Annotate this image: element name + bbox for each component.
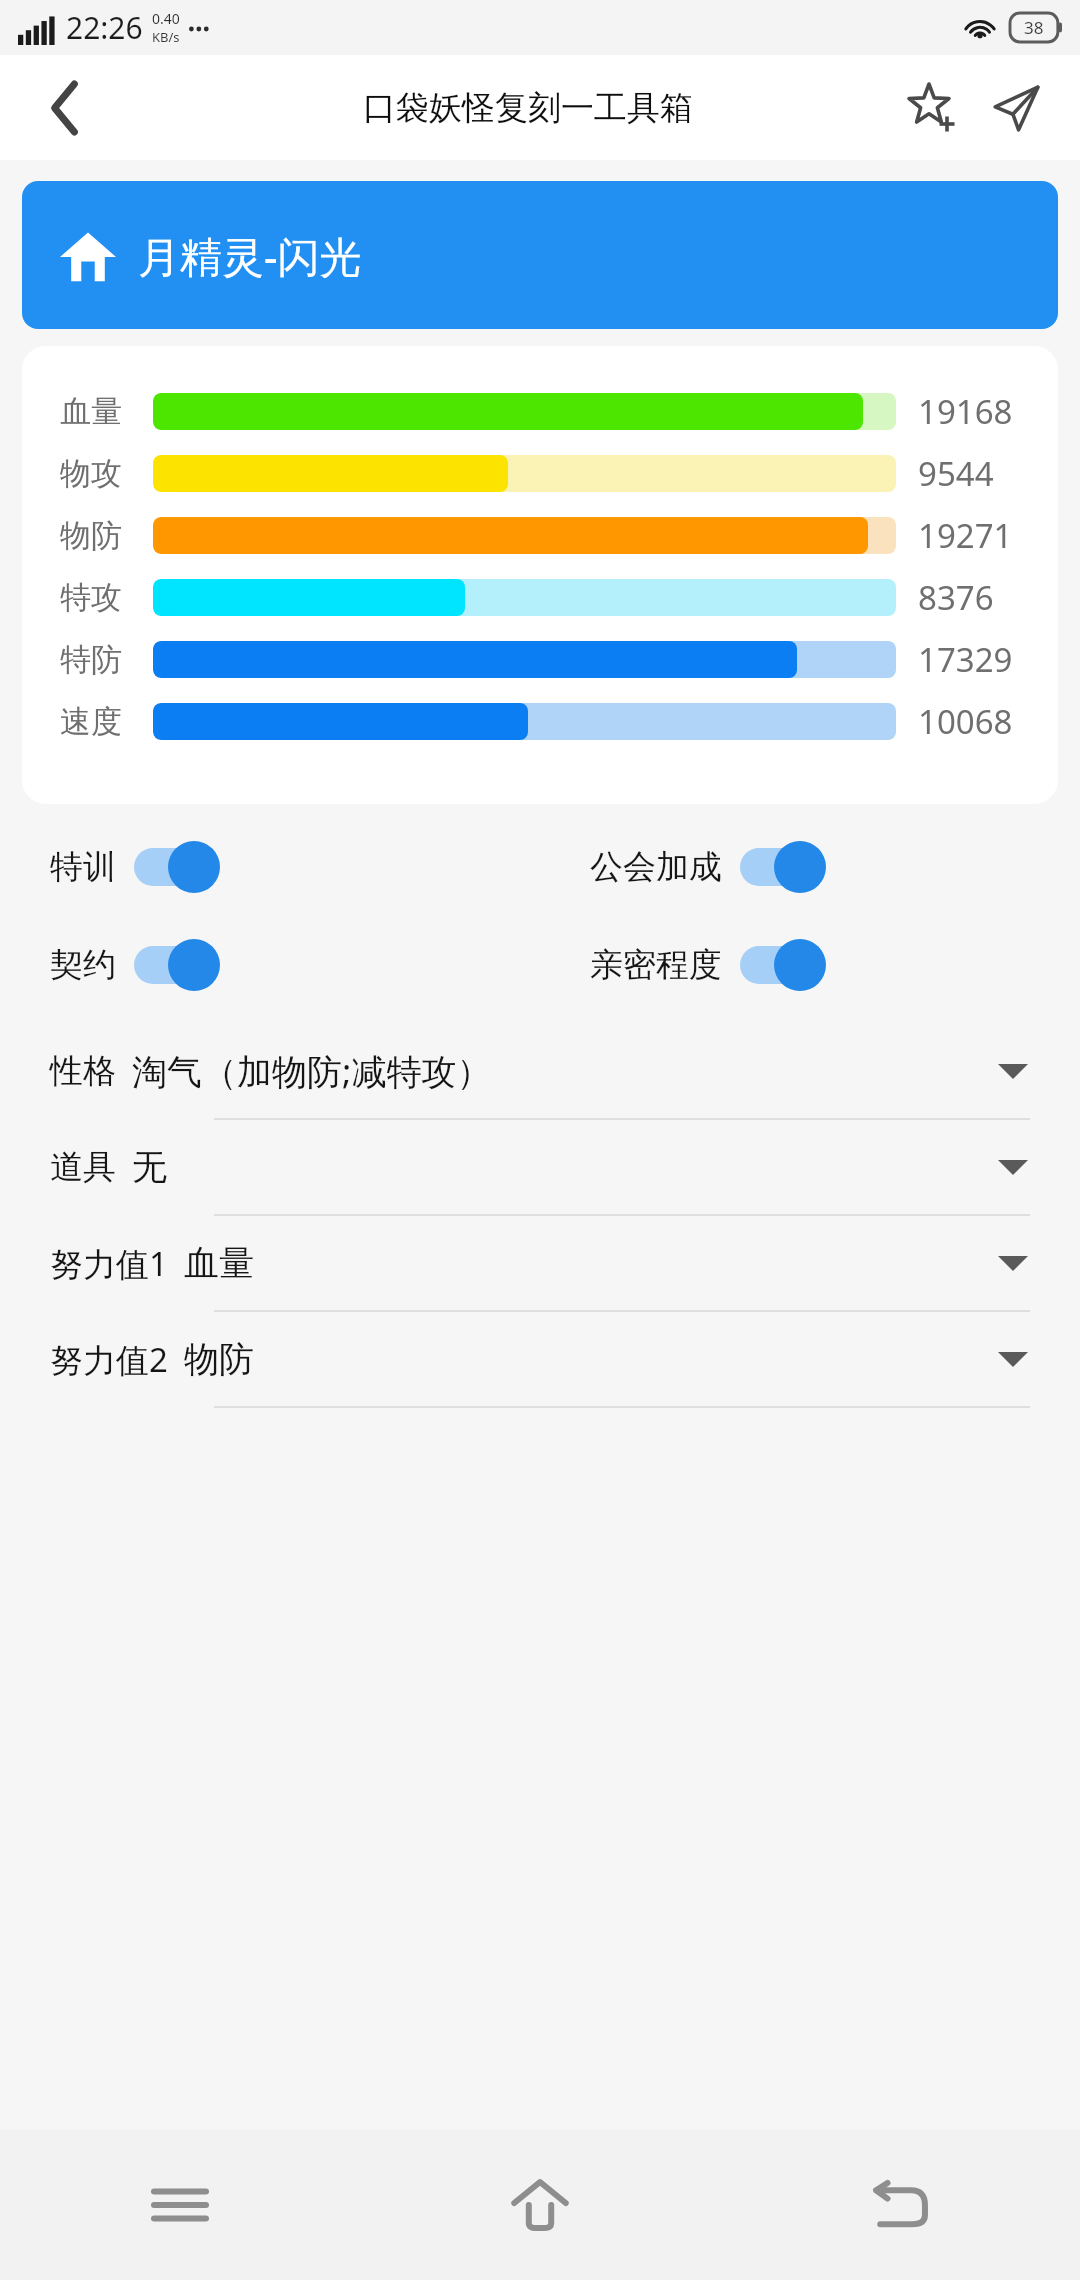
staticText: 19271	[918, 513, 1058, 558]
button[interactable]: 亲密程度	[590, 926, 1080, 1004]
staticText: 特训	[50, 846, 116, 888]
staticText: 契约	[50, 944, 116, 986]
button[interactable]: 努力值2	[0, 1312, 1080, 1408]
button[interactable]: Back	[720, 2130, 1080, 2280]
staticText: 0.40	[152, 9, 180, 28]
staticText: 19168	[918, 389, 1058, 434]
staticText: 努力值2	[50, 1337, 168, 1382]
staticText: 血量	[60, 392, 136, 431]
button[interactable]: 性格	[0, 1024, 1080, 1120]
staticText: 8376	[918, 575, 1058, 620]
button[interactable]: 月精灵-闪光	[22, 181, 1058, 329]
staticText: 血量	[184, 1241, 998, 1285]
staticText: 速度	[60, 702, 136, 741]
staticText: KB/s	[152, 28, 180, 46]
button[interactable]: 道具	[0, 1120, 1080, 1216]
staticText: 公会加成	[590, 846, 722, 888]
staticText: 9544	[918, 451, 1058, 496]
staticText: 月精灵-闪光	[138, 227, 362, 284]
staticText: 22:26	[66, 7, 143, 48]
staticText: 道具	[50, 1146, 116, 1188]
button[interactable]: 公会加成	[590, 828, 1080, 906]
staticText: 无	[132, 1145, 998, 1189]
staticText: 17329	[918, 637, 1058, 682]
button[interactable]: 特训	[50, 828, 540, 906]
button[interactable]: 努力值1	[0, 1216, 1080, 1312]
button[interactable]: Home	[360, 2130, 720, 2280]
staticText: 物防	[184, 1337, 998, 1381]
staticText: 努力值1	[50, 1241, 168, 1286]
button[interactable]: Share	[974, 66, 1058, 150]
staticText: 物攻	[60, 454, 136, 493]
staticText: 10068	[918, 699, 1058, 744]
staticText: 亲密程度	[590, 944, 722, 986]
staticText: 特防	[60, 640, 136, 679]
button[interactable]: 契约	[50, 926, 540, 1004]
staticText: 物防	[60, 516, 136, 555]
staticText: 淘气（加物防;减特攻）	[132, 1047, 998, 1095]
staticText: 性格	[50, 1050, 116, 1092]
button[interactable]: Back	[26, 68, 106, 148]
staticText: 特攻	[60, 578, 136, 617]
staticText: 口袋妖怪复刻一工具箱	[363, 87, 693, 129]
button[interactable]: Favorite	[890, 66, 974, 150]
staticText: 38	[1024, 16, 1044, 39]
button[interactable]: Menu	[0, 2130, 360, 2280]
